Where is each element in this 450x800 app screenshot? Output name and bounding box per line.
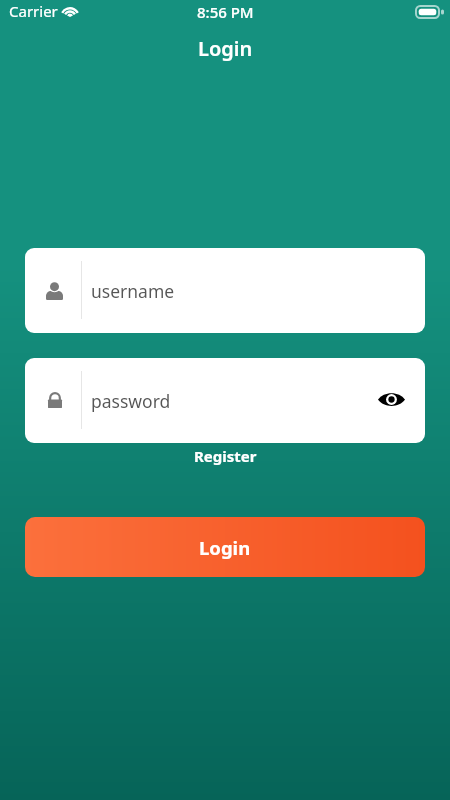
staticText: 8:56 PM (197, 2, 254, 22)
staticText: Login (198, 35, 253, 62)
staticText: Login (199, 535, 251, 560)
button[interactable]: username (25, 248, 425, 333)
staticText: Register (194, 446, 257, 466)
staticText: Carrier (9, 1, 58, 21)
staticText: password (91, 389, 171, 413)
button[interactable]: Register (184, 442, 267, 470)
button[interactable]: Show password (378, 392, 405, 409)
button[interactable]: password (25, 358, 425, 443)
staticText: username (91, 279, 175, 303)
button[interactable]: Login (25, 517, 425, 577)
